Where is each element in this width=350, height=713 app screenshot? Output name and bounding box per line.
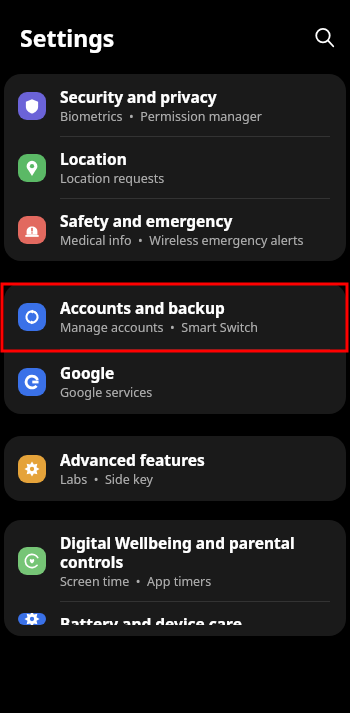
button[interactable]: Security and privacy bbox=[4, 74, 346, 136]
staticText: Location requests bbox=[60, 170, 165, 187]
staticText: Screen time • App timers bbox=[60, 573, 212, 590]
staticText: Security and privacy bbox=[60, 86, 217, 107]
staticText: Digital Wellbeing and parental controls bbox=[60, 532, 332, 572]
button[interactable]: Accounts and backup bbox=[4, 283, 346, 349]
button[interactable]: Google bbox=[4, 350, 346, 414]
staticText: Google bbox=[60, 362, 115, 383]
staticText: Safety and emergency bbox=[60, 210, 233, 231]
button[interactable]: Search bbox=[302, 15, 346, 59]
staticText: Manage accounts • Smart Switch bbox=[60, 319, 258, 336]
staticText: Settings bbox=[20, 22, 115, 53]
staticText: Advanced features bbox=[60, 449, 205, 470]
staticText: Google services bbox=[60, 384, 153, 401]
staticText: Battery and device care bbox=[60, 613, 242, 625]
staticText: Accounts and backup bbox=[60, 297, 225, 318]
staticText: Labs • Side key bbox=[60, 471, 153, 488]
staticText: Biometrics • Permission manager bbox=[60, 108, 263, 125]
button[interactable]: Digital Wellbeing and parental controls bbox=[4, 520, 346, 601]
staticText: Location bbox=[60, 148, 127, 169]
button[interactable]: Battery and device care bbox=[4, 602, 346, 636]
staticText: Medical info • Wireless emergency alerts bbox=[60, 232, 304, 249]
button[interactable]: Advanced features bbox=[4, 436, 346, 501]
button[interactable]: Safety and emergency bbox=[4, 199, 346, 261]
button[interactable]: Location bbox=[4, 137, 346, 198]
